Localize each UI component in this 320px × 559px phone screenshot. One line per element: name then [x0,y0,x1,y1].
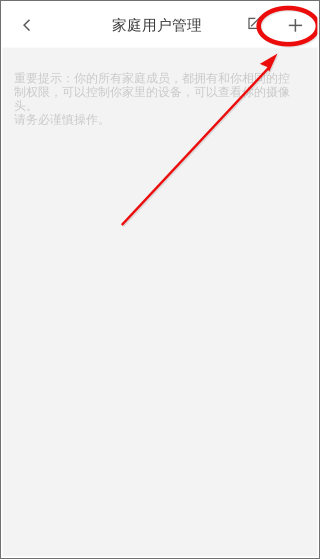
button[interactable]: 编辑 [235,0,273,48]
button[interactable]: 返回 [3,0,49,48]
staticText: 家庭用户管理 [112,16,202,34]
button[interactable]: 添加家庭用户 [273,0,317,48]
staticText: 重要提示：你的所有家庭成员，都拥有和你相同的控制权限，可以控制你家里的设备，可以… [14,71,290,127]
